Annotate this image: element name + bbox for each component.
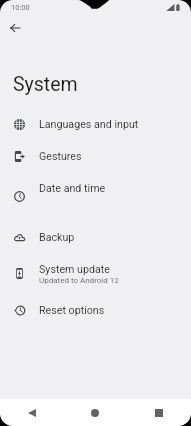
button[interactable]: Languages and input (0, 108, 191, 140)
button[interactable]: Date and time (0, 172, 191, 204)
button[interactable]: System update (0, 253, 191, 294)
staticText: Languages and input (39, 118, 139, 131)
staticText: Backup (39, 231, 75, 244)
staticText: Reset options (39, 304, 105, 317)
button[interactable]: Recent apps (147, 401, 171, 425)
staticText: Updated to Android 12 (39, 276, 119, 285)
button[interactable]: Gestures (0, 140, 191, 172)
staticText: 10:00 (11, 3, 30, 12)
button[interactable]: Reset options (0, 294, 191, 326)
staticText: System (13, 73, 78, 96)
button[interactable]: Home (83, 401, 107, 425)
staticText: Date and time (39, 182, 106, 195)
button[interactable]: Backup (0, 221, 191, 253)
button[interactable]: Back (20, 401, 44, 425)
staticText: Gestures (39, 150, 82, 163)
staticText: System update (39, 263, 111, 276)
button[interactable]: Navigate up (3, 16, 27, 40)
